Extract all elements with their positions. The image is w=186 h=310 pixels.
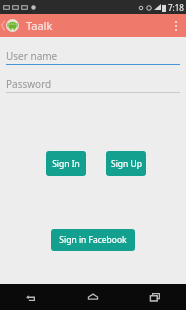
button[interactable]: More options xyxy=(166,14,186,37)
button[interactable]: User name xyxy=(6,48,180,64)
staticText: Sign in Facebook xyxy=(59,234,127,246)
button[interactable]: Sign Up xyxy=(106,151,146,176)
staticText: Taalk xyxy=(26,18,53,33)
staticText: 7:18 xyxy=(168,2,184,13)
button[interactable]: Back xyxy=(0,284,62,310)
button[interactable]: Home xyxy=(62,284,124,310)
button[interactable]: Sign in Facebook xyxy=(51,229,135,251)
button[interactable]: Navigate up xyxy=(0,14,20,37)
button[interactable]: Password xyxy=(6,76,180,92)
button[interactable]: Recent apps xyxy=(124,284,186,310)
staticText: Sign Up xyxy=(111,158,142,170)
staticText: User name xyxy=(6,49,58,63)
button[interactable]: Sign In xyxy=(46,151,86,176)
staticText: Sign In xyxy=(52,158,80,170)
staticText: Password xyxy=(6,77,52,91)
